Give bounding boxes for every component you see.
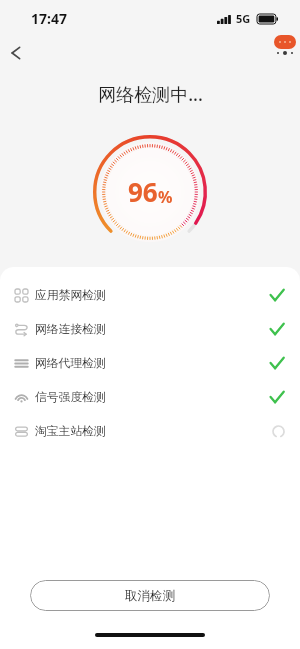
- staticText: 取消检测: [125, 588, 175, 604]
- button[interactable]: 应用禁网检测: [0, 278, 300, 312]
- staticText: 淘宝主站检测: [35, 424, 106, 439]
- button[interactable]: 淘宝主站检测: [0, 414, 300, 448]
- button[interactable]: 网络连接检测: [0, 312, 300, 346]
- staticText: 网络检测中...: [98, 82, 203, 106]
- staticText: 网络代理检测: [35, 356, 106, 371]
- button[interactable]: Back: [2, 39, 30, 67]
- button[interactable]: 取消检测: [30, 580, 270, 611]
- staticText: %: [158, 186, 173, 208]
- staticText: 96: [128, 174, 158, 209]
- staticText: 5G: [236, 11, 251, 26]
- staticText: 网络连接检测: [35, 322, 106, 337]
- staticText: 应用禁网检测: [35, 288, 106, 303]
- button[interactable]: 信号强度检测: [0, 380, 300, 414]
- staticText: 17:47: [31, 9, 67, 28]
- button[interactable]: 网络代理检测: [0, 346, 300, 380]
- button[interactable]: More options: [274, 35, 296, 49]
- staticText: 信号强度检测: [35, 390, 106, 405]
